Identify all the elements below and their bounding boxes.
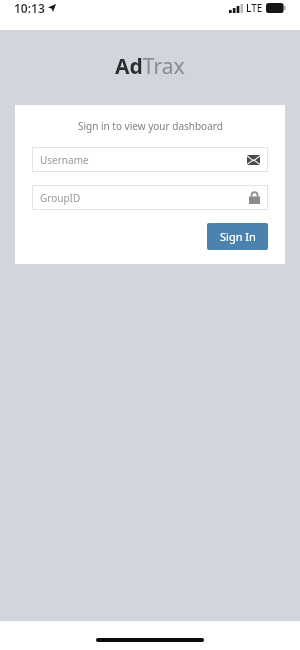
staticText: Username <box>40 153 89 167</box>
staticText: 10:13 <box>14 0 45 16</box>
other: Password <box>249 191 260 204</box>
button[interactable]: Sign In <box>207 223 268 250</box>
staticText: Sign In <box>220 229 256 244</box>
staticText: LTE <box>246 1 263 15</box>
staticText: AdTrax <box>115 52 185 81</box>
staticText: GroupID <box>40 191 81 205</box>
button[interactable]: Username <box>32 147 268 172</box>
button[interactable]: GroupID <box>32 185 268 210</box>
other: Email <box>247 155 260 165</box>
staticText: Sign in to view your dashboard <box>78 119 223 133</box>
